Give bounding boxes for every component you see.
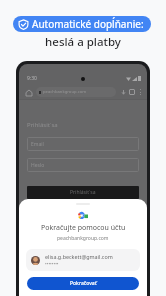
button[interactable]: Download (121, 90, 126, 95)
staticText: Email (31, 141, 44, 148)
staticText: peachbankgroup.com (57, 235, 109, 242)
button[interactable]: Prihlásiť sa (27, 186, 139, 199)
button[interactable]: Automatické dopĺňanie: (13, 16, 151, 32)
staticText: Prihlásiť sa (27, 121, 58, 129)
button[interactable]: More options (138, 88, 142, 96)
button[interactable]: Pokračovať (27, 277, 139, 290)
staticText: elisa.g.beckett@gmail.com (45, 253, 113, 260)
staticText: Automatické dopĺňanie: (32, 17, 144, 31)
staticText: Pokračovať (70, 280, 97, 287)
staticText: Pokračujte pomocou účtu (41, 223, 126, 233)
button[interactable]: peachbankgroup.com (36, 87, 116, 97)
staticText: 9:30 (27, 75, 37, 82)
button[interactable]: Home (24, 88, 33, 97)
button[interactable]: Tabs (129, 89, 135, 95)
staticText: Heslo (31, 162, 45, 169)
staticText: •••••••• (45, 261, 59, 267)
staticText: peachbankgroup.com (43, 89, 87, 95)
button[interactable]: elisa.g.beckett@gmail.com (26, 249, 140, 271)
button[interactable]: Heslo (27, 158, 139, 172)
button[interactable]: Email (27, 137, 139, 151)
staticText: Prihlásiť sa (70, 189, 96, 196)
staticText: heslá a platby (0, 34, 166, 50)
